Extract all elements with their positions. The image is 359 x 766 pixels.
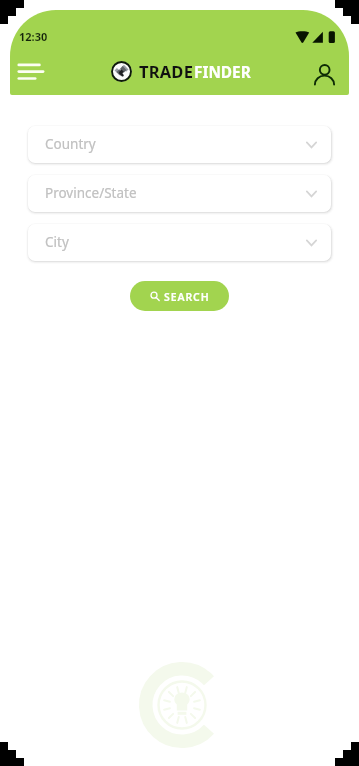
button[interactable]: Country bbox=[28, 126, 331, 163]
staticText: Country bbox=[45, 135, 96, 153]
staticText: SEARCH bbox=[164, 290, 210, 304]
button[interactable]: SEARCH bbox=[130, 281, 229, 311]
button[interactable]: Province/State bbox=[28, 175, 331, 212]
staticText: 12:30 bbox=[19, 29, 48, 44]
button[interactable]: Open navigation menu bbox=[10, 55, 52, 89]
button[interactable]: City bbox=[28, 224, 331, 261]
staticText: City bbox=[45, 233, 69, 251]
staticText: FINDER bbox=[194, 60, 252, 82]
staticText: Province/State bbox=[45, 184, 137, 202]
button[interactable]: Account bbox=[308, 56, 342, 90]
staticText: TRADE bbox=[139, 60, 194, 82]
